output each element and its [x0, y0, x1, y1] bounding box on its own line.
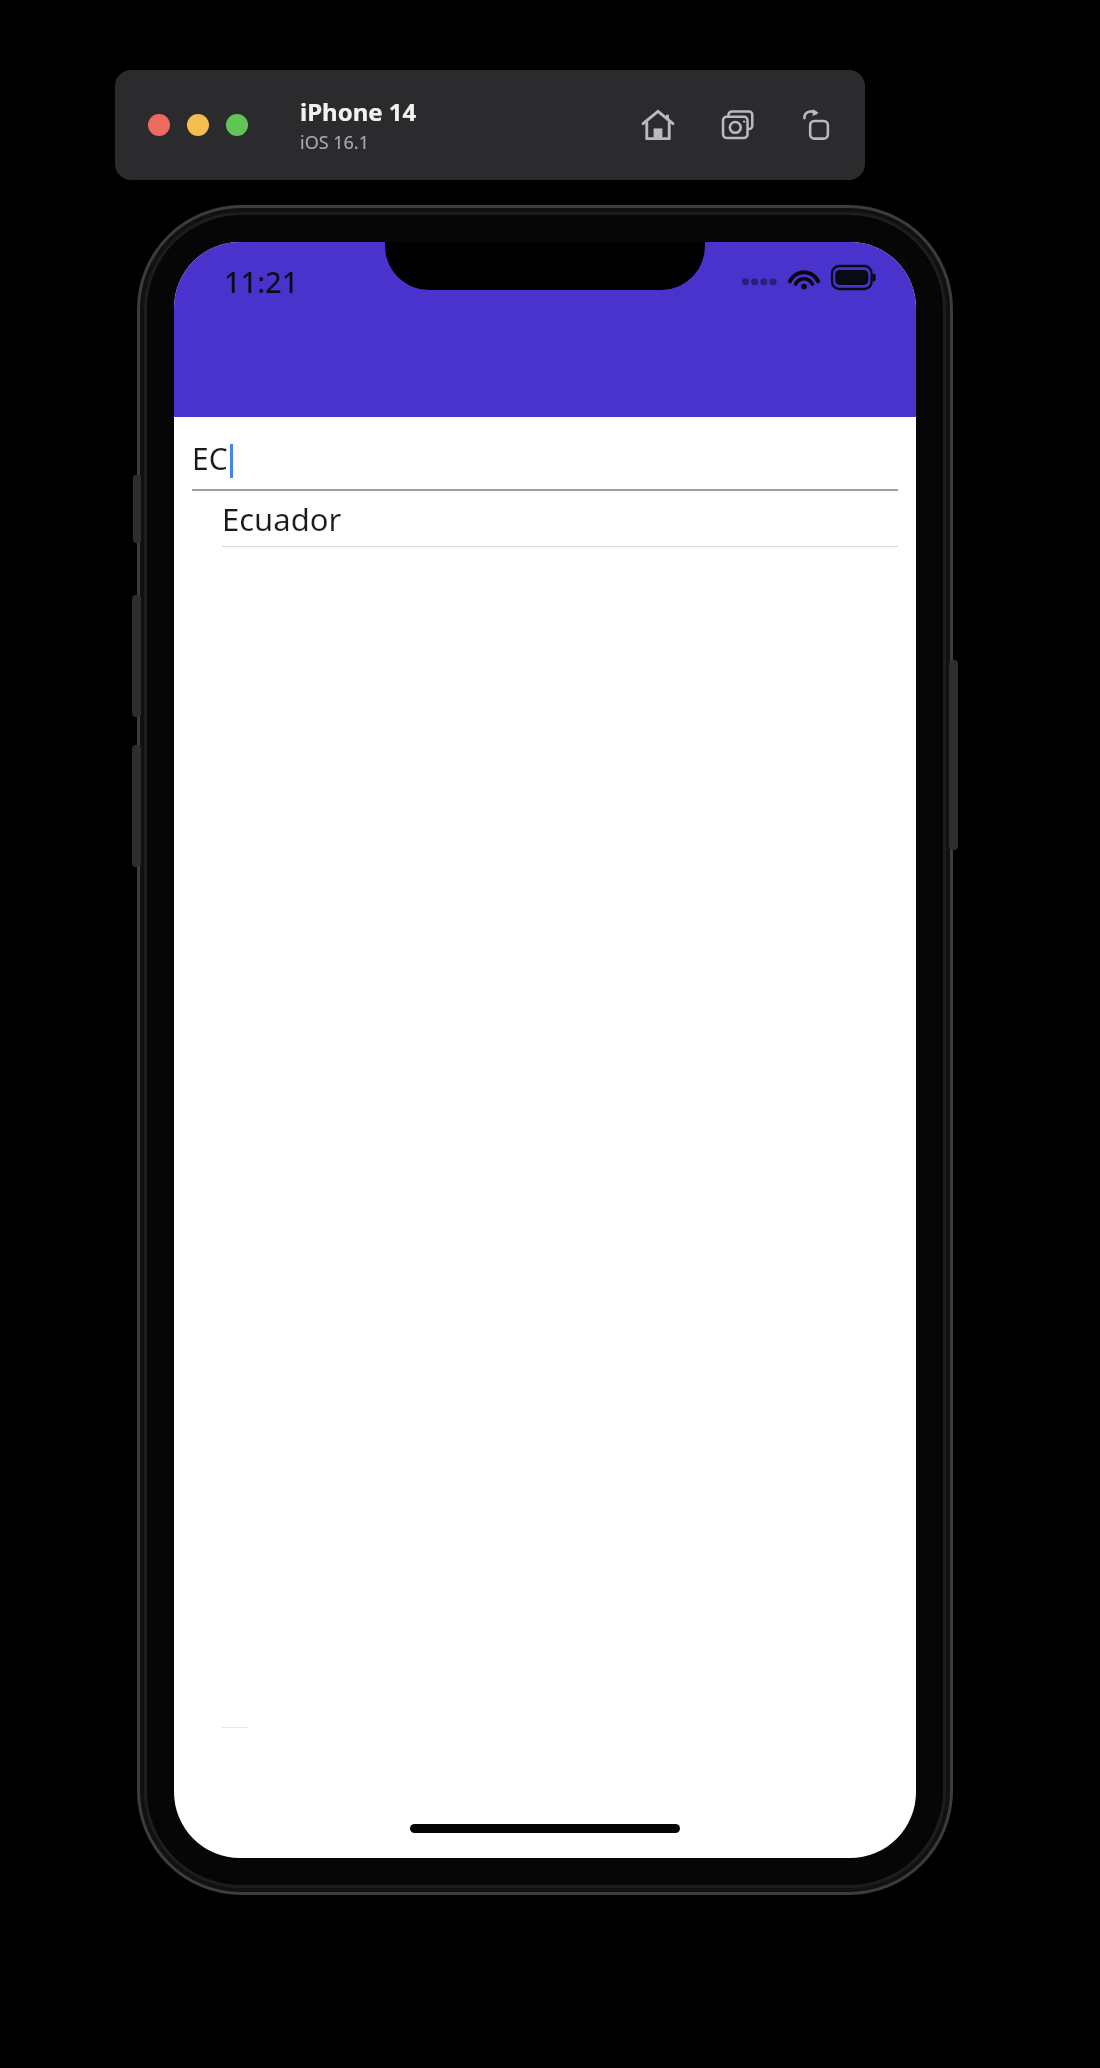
button[interactable]: Home [635, 102, 681, 148]
button[interactable]: Close [148, 114, 170, 136]
staticText: iPhone 14 [300, 95, 417, 128]
staticText: Ecuador [222, 498, 342, 540]
button[interactable]: Ecuador [174, 491, 916, 547]
button[interactable]: Minimise [187, 114, 209, 136]
button[interactable]: Screenshot [715, 102, 761, 148]
button[interactable]: Rotate [795, 102, 841, 148]
button[interactable]: Zoom [226, 114, 248, 136]
staticText: 11:21 [224, 262, 299, 301]
button[interactable]: EC [192, 435, 898, 491]
staticText: iOS 16.1 [300, 130, 369, 155]
staticText: EC [192, 438, 228, 479]
